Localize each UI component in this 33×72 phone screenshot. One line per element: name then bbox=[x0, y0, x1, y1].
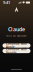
staticText: 9:41 bbox=[3, 0, 10, 5]
staticText: Continue with Google bbox=[6, 47, 27, 54]
button[interactable]: Continue with Apple bbox=[2, 43, 30, 48]
staticText: Claude bbox=[8, 26, 25, 33]
staticText: Your AI assistant bbox=[6, 34, 27, 37]
button[interactable]: Continue with Google bbox=[2, 49, 30, 53]
staticText: Continue with Apple bbox=[6, 42, 27, 49]
